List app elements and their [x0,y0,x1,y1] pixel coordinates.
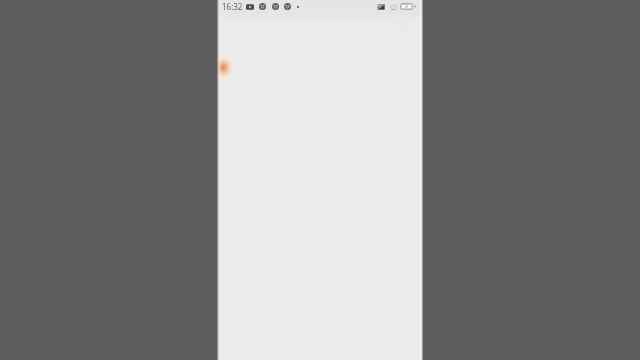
staticText: 16:32 [222,1,243,12]
button[interactable]: Compose [217,52,235,82]
